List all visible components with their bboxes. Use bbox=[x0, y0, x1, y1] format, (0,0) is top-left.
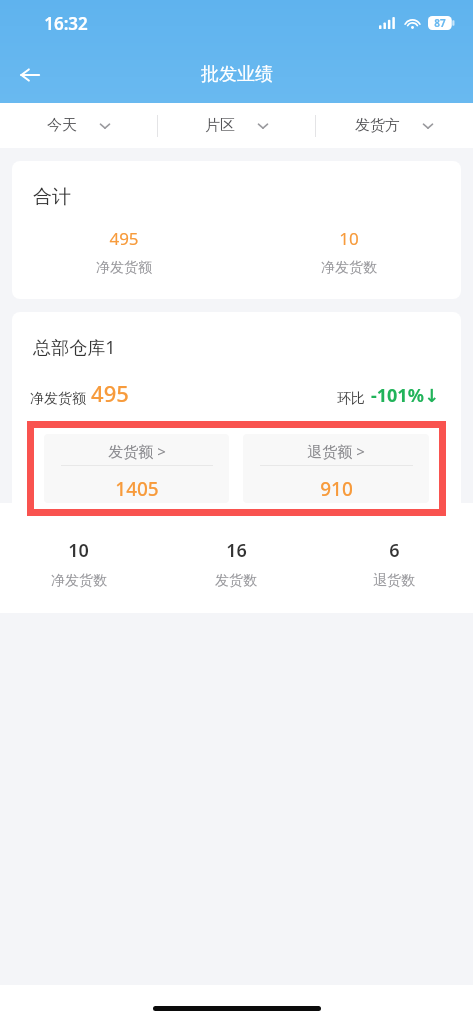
button[interactable]: Back bbox=[8, 53, 52, 97]
staticText: 16 bbox=[226, 538, 247, 563]
button[interactable]: 发货额 > bbox=[44, 434, 229, 503]
staticText: 退货数 bbox=[373, 572, 415, 590]
staticText: 净发货额 bbox=[96, 259, 152, 277]
button[interactable]: 6 bbox=[315, 538, 473, 590]
staticText: 发货数 bbox=[215, 572, 257, 590]
staticText: 发货方 bbox=[355, 116, 400, 135]
staticText: 今天 bbox=[47, 116, 77, 135]
staticText: 495 bbox=[109, 227, 139, 250]
button[interactable]: 10 bbox=[0, 538, 157, 590]
staticText: 910 bbox=[320, 476, 353, 502]
button[interactable]: 495 bbox=[12, 227, 236, 277]
staticText: 6 bbox=[389, 538, 400, 563]
button[interactable]: 今天 bbox=[0, 103, 157, 148]
staticText: 发货额 > bbox=[108, 441, 166, 461]
staticText: 87 bbox=[434, 16, 446, 30]
staticText: 批发业绩 bbox=[201, 63, 273, 86]
staticText: 环比 bbox=[337, 390, 365, 408]
staticText: 片区 bbox=[205, 116, 235, 135]
button[interactable]: 片区 bbox=[158, 103, 315, 148]
button[interactable]: 合计 bbox=[12, 161, 461, 299]
button[interactable]: 10 bbox=[236, 227, 461, 277]
staticText: 总部仓库1 bbox=[33, 335, 116, 360]
button[interactable]: 发货方 bbox=[316, 103, 473, 148]
staticText: 495 bbox=[91, 378, 129, 408]
staticText: 10 bbox=[68, 538, 89, 563]
staticText: 10 bbox=[339, 227, 359, 250]
button[interactable]: 16 bbox=[157, 538, 315, 590]
staticText: 退货额 > bbox=[307, 441, 365, 461]
staticText: 净发货数 bbox=[321, 259, 377, 277]
staticText: -101%↓ bbox=[371, 383, 439, 408]
staticText: 16:32 bbox=[44, 12, 88, 35]
staticText: 1405 bbox=[115, 476, 159, 502]
staticText: 合计 bbox=[33, 185, 71, 209]
staticText: 净发货额 bbox=[30, 390, 86, 408]
staticText: 净发货数 bbox=[51, 572, 107, 590]
button[interactable]: 退货额 > bbox=[243, 434, 429, 503]
